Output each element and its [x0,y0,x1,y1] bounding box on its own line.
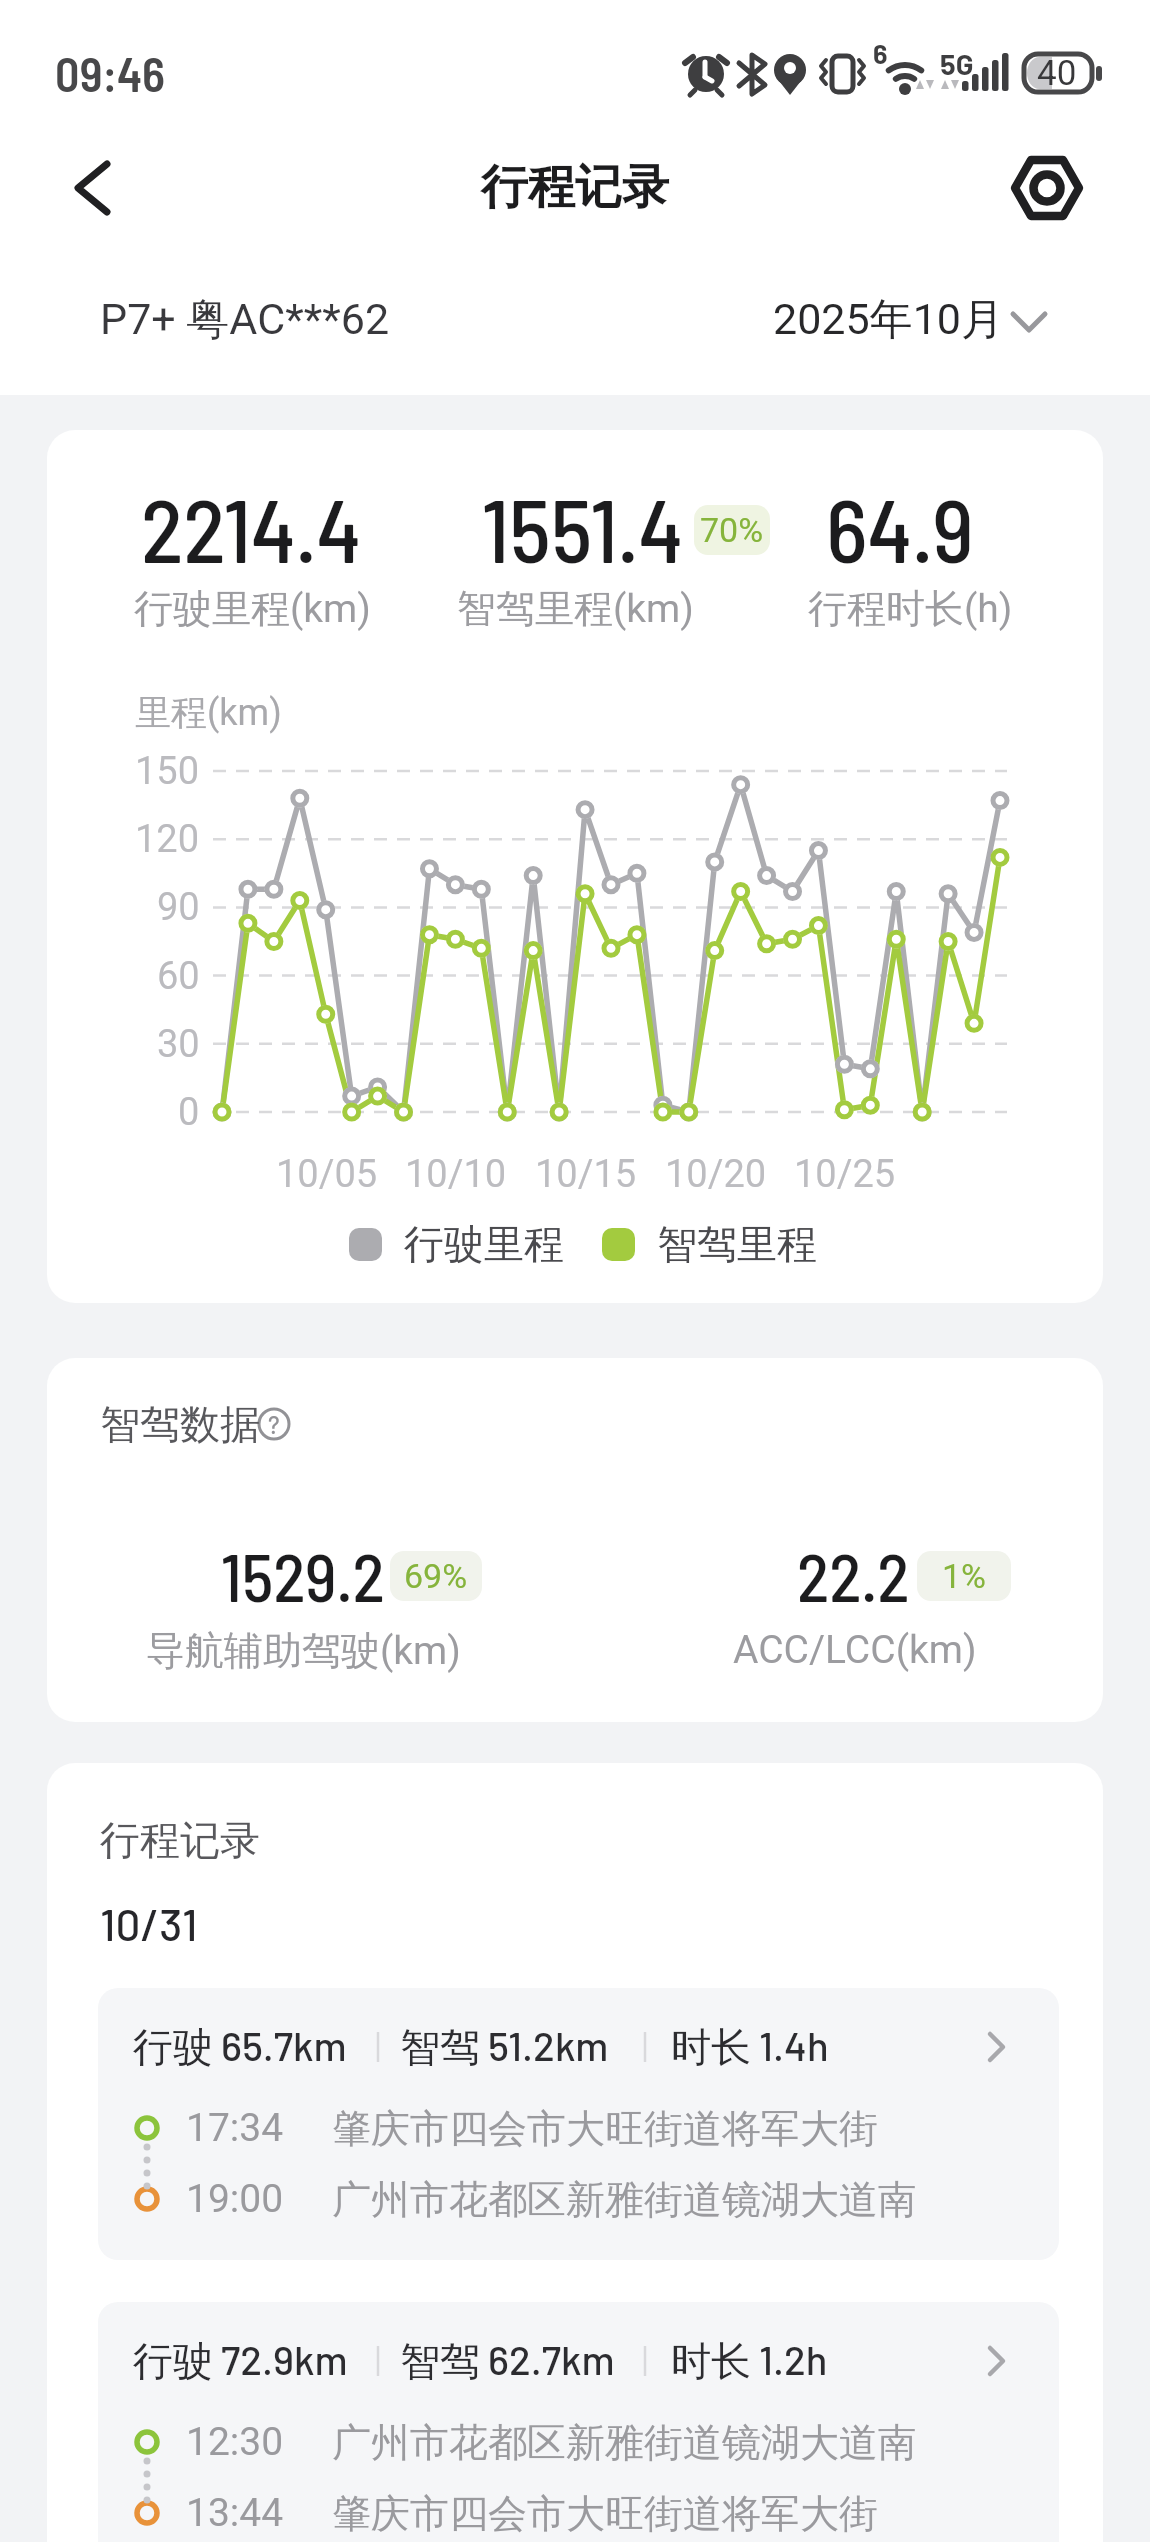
staticText: 19:00 [186,2176,284,2222]
staticText: ? [268,1410,280,1439]
staticText: 10/20 [665,1152,767,1197]
staticText: 行程记录 [100,1815,260,1865]
staticText: 90 [157,885,200,930]
staticText: 10/15 [535,1152,637,1197]
staticText: 5G [940,46,974,81]
staticText: 64.9 [826,475,974,575]
staticText: 时长 1.4h [671,2021,829,2073]
staticText: 行驶里程(km) [134,584,371,633]
staticText: 30 [157,1022,200,1067]
staticText: 6 [873,37,888,67]
staticText: 0 [178,1090,200,1135]
staticText: 60 [157,954,200,999]
staticText: 广州市花都区新雅街道镜湖大道南 [332,2418,917,2467]
button[interactable] [98,1988,1059,2260]
staticText: 智驾 51.2km [400,2021,609,2073]
staticText: 70% [700,510,764,550]
button[interactable] [98,2302,1059,2542]
staticText: 10/25 [794,1152,896,1197]
staticText: 2214.4 [141,475,361,575]
staticText: 行驶 65.7km [133,2021,347,2073]
button[interactable] [55,150,135,230]
staticText: ACC/LCC(km) [733,1627,977,1673]
staticText: 1% [942,1556,987,1596]
staticText: 10/10 [405,1152,507,1197]
staticText: 12:30 [186,2419,284,2465]
staticText: 69% [404,1556,468,1596]
staticText: 智驾里程 [657,1219,817,1269]
staticText: 里程(km) [135,690,282,735]
button[interactable] [250,1400,298,1448]
staticText: 10/31 [100,1897,198,1950]
staticText: 09:46 [55,44,166,102]
staticText: 导航辅助驾驶(km) [146,1626,461,1675]
staticText: 智驾里程(km) [457,584,694,633]
staticText: 时长 1.2h [671,2335,828,2387]
staticText: 行驶里程 [404,1219,564,1269]
staticText: P7+ 粤AC***62 [100,293,390,347]
staticText: 120 [135,817,200,862]
staticText: 17:34 [186,2105,284,2151]
staticText: 肇庆市四会市大旺街道将军大街 [332,2489,878,2538]
staticText: 2025年10月 [773,293,1004,347]
staticText: 智驾 62.7km [400,2335,615,2387]
staticText: 1551.4 [482,475,683,575]
staticText: 行程记录 [481,158,669,217]
staticText: 10/05 [276,1152,378,1197]
staticText: 广州市花都区新雅街道镜湖大道南 [332,2175,917,2224]
staticText: 1529.2 [221,1535,385,1615]
staticText: 13:44 [186,2490,284,2536]
staticText: 肇庆市四会市大旺街道将军大街 [332,2104,878,2153]
staticText: 40 [1037,53,1077,94]
button[interactable] [760,280,1060,360]
staticText: 智驾数据 [100,1399,260,1449]
staticText: 行驶 72.9km [133,2335,348,2387]
staticText: 22.2 [797,1535,910,1615]
button[interactable] [1005,148,1090,228]
staticText: 行程时长(h) [808,584,1013,633]
staticText: 150 [135,749,200,794]
